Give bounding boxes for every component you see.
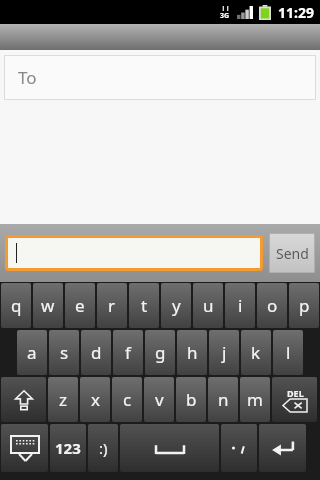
button[interactable]: b bbox=[176, 377, 206, 422]
button[interactable]: s bbox=[49, 330, 79, 375]
staticText: z bbox=[59, 388, 67, 411]
staticText: l bbox=[286, 341, 291, 364]
button[interactable]: z bbox=[48, 377, 78, 422]
button[interactable]: a bbox=[17, 330, 47, 375]
button[interactable]: Period and comma bbox=[221, 424, 257, 472]
staticText: 123 bbox=[55, 438, 81, 458]
staticText: o bbox=[267, 294, 278, 317]
staticText: :) bbox=[99, 438, 108, 458]
button[interactable]: c bbox=[112, 377, 142, 422]
staticText: DEL bbox=[287, 387, 304, 399]
staticText: 11:29 bbox=[278, 3, 314, 22]
button[interactable]: f bbox=[113, 330, 143, 375]
button[interactable]: l bbox=[273, 330, 303, 375]
staticText: f bbox=[125, 341, 131, 364]
staticText: m bbox=[247, 388, 263, 411]
button[interactable]: n bbox=[208, 377, 238, 422]
button[interactable]: :) bbox=[88, 424, 118, 472]
staticText: p bbox=[299, 294, 310, 317]
button[interactable]: Enter bbox=[259, 424, 306, 472]
button[interactable]: To bbox=[5, 56, 315, 99]
button[interactable] bbox=[8, 238, 260, 268]
staticText: y bbox=[172, 294, 181, 317]
staticText: h bbox=[187, 341, 198, 364]
button[interactable]: d bbox=[81, 330, 111, 375]
staticText: n bbox=[218, 388, 229, 411]
staticText: b bbox=[186, 388, 197, 411]
button[interactable]: v bbox=[144, 377, 174, 422]
staticText: a bbox=[27, 341, 37, 364]
button[interactable]: t bbox=[129, 283, 159, 328]
staticText: k bbox=[251, 341, 261, 364]
button[interactable]: y bbox=[161, 283, 191, 328]
button[interactable]: j bbox=[209, 330, 239, 375]
button[interactable]: Space bbox=[120, 424, 219, 472]
button[interactable]: w bbox=[33, 283, 63, 328]
staticText: t bbox=[141, 294, 148, 317]
staticText: v bbox=[155, 388, 164, 411]
staticText: u bbox=[203, 294, 214, 317]
button[interactable]: p bbox=[289, 283, 319, 328]
staticText: j bbox=[222, 341, 227, 364]
button[interactable]: g bbox=[145, 330, 175, 375]
button[interactable]: u bbox=[193, 283, 223, 328]
button[interactable]: k bbox=[241, 330, 271, 375]
button[interactable]: i bbox=[225, 283, 255, 328]
staticText: 3G bbox=[220, 11, 230, 21]
staticText: d bbox=[91, 341, 102, 364]
staticText: Send bbox=[276, 244, 309, 263]
button[interactable]: Hide keyboard bbox=[1, 424, 48, 472]
staticText: To bbox=[18, 66, 37, 89]
staticText: q bbox=[11, 294, 22, 317]
button[interactable]: Delete bbox=[272, 377, 317, 422]
staticText: g bbox=[155, 341, 166, 364]
button[interactable]: Send bbox=[270, 234, 314, 272]
staticText: e bbox=[75, 294, 85, 317]
button[interactable]: m bbox=[240, 377, 270, 422]
staticText: s bbox=[60, 341, 69, 364]
button[interactable]: e bbox=[65, 283, 95, 328]
staticText: i bbox=[238, 294, 243, 317]
staticText: r bbox=[108, 294, 116, 317]
button[interactable]: x bbox=[80, 377, 110, 422]
button[interactable]: o bbox=[257, 283, 287, 328]
staticText: w bbox=[41, 294, 55, 317]
staticText: x bbox=[91, 388, 100, 411]
button[interactable]: h bbox=[177, 330, 207, 375]
button[interactable]: q bbox=[1, 283, 31, 328]
button[interactable]: r bbox=[97, 283, 127, 328]
staticText: c bbox=[123, 388, 132, 411]
button[interactable]: Shift bbox=[1, 377, 46, 422]
button[interactable]: 123 bbox=[50, 424, 86, 472]
